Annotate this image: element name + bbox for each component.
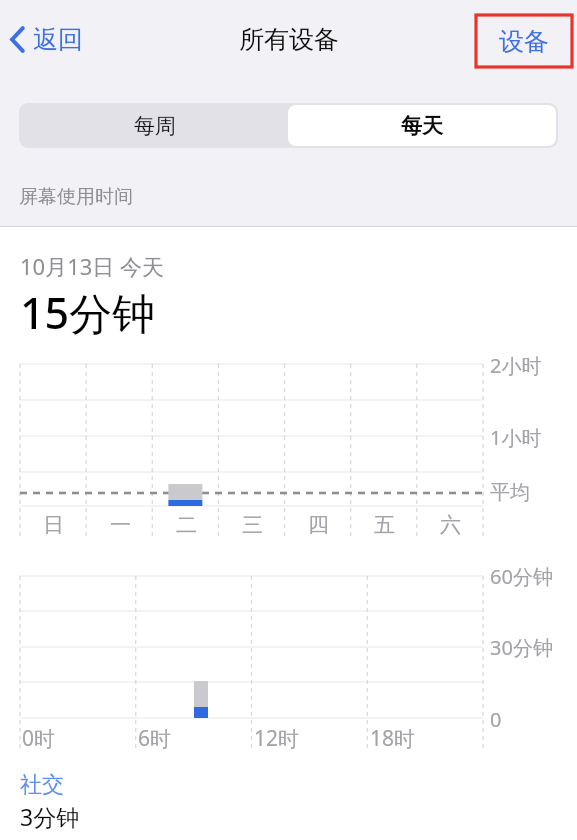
staticText: 二 xyxy=(176,512,197,538)
staticText: 五 xyxy=(374,512,395,538)
staticText: 6时 xyxy=(138,724,172,753)
staticText: 所有设备 xyxy=(239,24,339,55)
staticText: 12时 xyxy=(254,724,300,753)
staticText: 设备 xyxy=(499,26,549,57)
button[interactable]: 设备 xyxy=(476,15,572,67)
staticText: 3分钟 xyxy=(20,801,80,832)
staticText: 屏幕使用时间 xyxy=(19,185,133,209)
staticText: 0时 xyxy=(22,724,56,753)
staticText: 18时 xyxy=(370,724,416,753)
staticText: 四 xyxy=(308,512,329,538)
button[interactable]: 每周 xyxy=(21,105,288,146)
button[interactable]: Back xyxy=(0,16,93,63)
staticText: 返回 xyxy=(33,24,83,55)
staticText: 每天 xyxy=(401,113,443,139)
staticText: 每周 xyxy=(134,113,176,139)
staticText: 平均 xyxy=(490,480,530,505)
staticText: 三 xyxy=(242,512,263,538)
staticText: 10月13日 今天 xyxy=(20,251,165,281)
staticText: 2小时 xyxy=(490,352,542,379)
staticText: 0 xyxy=(490,706,502,733)
staticText: 1小时 xyxy=(490,424,542,451)
staticText: 30分钟 xyxy=(490,634,553,661)
staticText: 日 xyxy=(43,512,64,538)
staticText: 60分钟 xyxy=(490,563,553,590)
button[interactable]: 每天 xyxy=(288,105,556,146)
button[interactable]: 社交 xyxy=(0,771,577,832)
staticText: 15分钟 xyxy=(20,283,156,342)
staticText: 六 xyxy=(440,512,461,538)
staticText: 社交 xyxy=(20,771,64,799)
staticText: 一 xyxy=(110,512,131,538)
